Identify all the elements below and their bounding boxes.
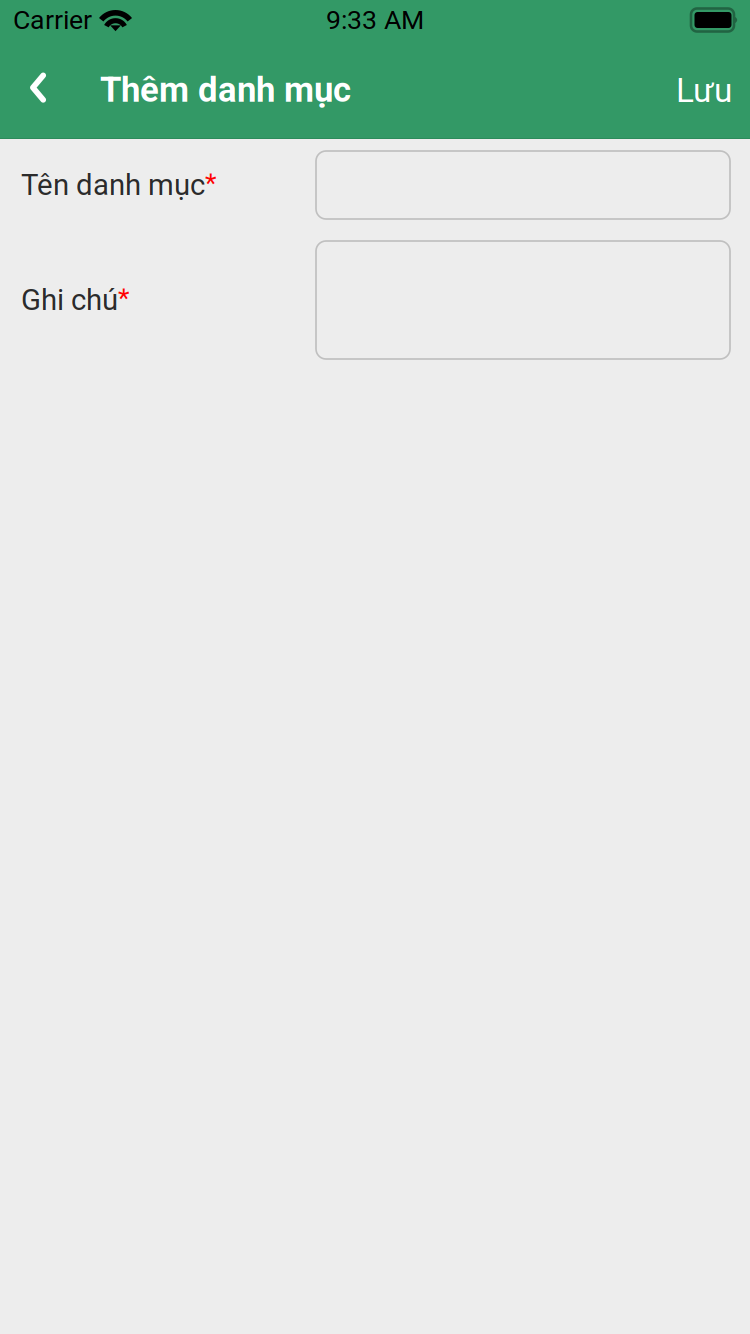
staticText: Carrier <box>13 4 92 36</box>
staticText: Lưu <box>676 71 732 110</box>
staticText: Ghi chú <box>21 283 118 317</box>
button[interactable]: Lưu <box>652 40 750 138</box>
staticText: Thêm danh mục <box>100 70 351 110</box>
staticText: * <box>205 167 216 198</box>
staticText: * <box>118 282 129 313</box>
button[interactable]: Back <box>0 40 100 138</box>
staticText: 9:33 AM <box>326 4 424 36</box>
staticText: Tên danh mục <box>21 168 205 202</box>
